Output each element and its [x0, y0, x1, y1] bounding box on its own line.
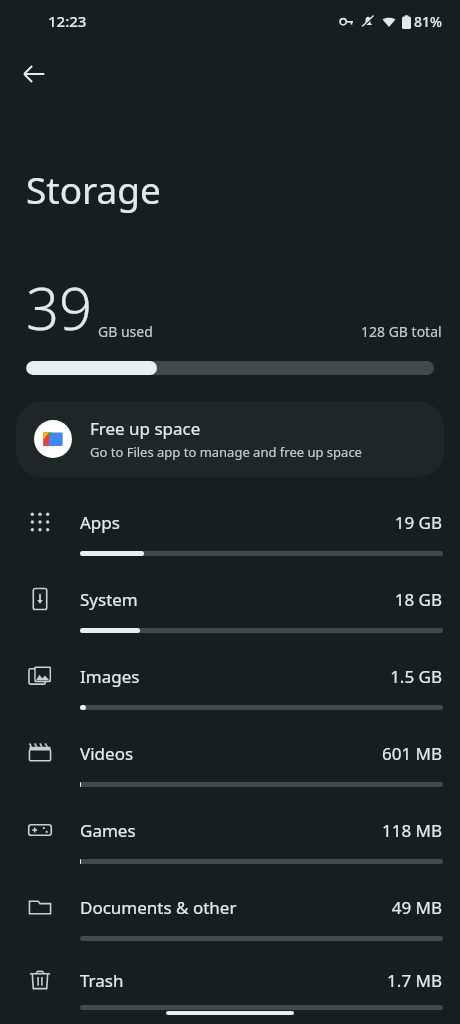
staticText: 39: [26, 268, 93, 347]
button[interactable]: Videos: [0, 724, 460, 801]
button[interactable]: Free up space: [16, 401, 444, 477]
staticText: Trash: [80, 969, 387, 992]
button[interactable]: System: [0, 570, 460, 647]
staticText: Games: [80, 819, 381, 842]
staticText: Apps: [80, 511, 394, 534]
staticText: Videos: [80, 742, 381, 765]
button[interactable]: Images: [0, 647, 460, 724]
staticText: 1.7 MB: [387, 969, 442, 992]
button[interactable]: Apps: [0, 493, 460, 570]
staticText: 601 MB: [381, 742, 442, 765]
staticText: 118 MB: [381, 819, 442, 842]
staticText: Documents & other: [80, 896, 391, 919]
staticText: Images: [80, 665, 390, 688]
staticText: GB used: [98, 322, 153, 341]
button[interactable]: Games: [0, 801, 460, 878]
staticText: 128 GB total: [361, 322, 442, 341]
staticText: Go to Files app to manage and free up sp…: [90, 443, 362, 461]
staticText: Storage: [26, 164, 161, 214]
staticText: 18 GB: [394, 588, 442, 611]
staticText: 1.5 GB: [390, 665, 442, 688]
button[interactable]: Back: [10, 50, 58, 98]
staticText: System: [80, 588, 394, 611]
staticText: Free up space: [90, 417, 201, 440]
staticText: 81%: [414, 12, 442, 31]
button[interactable]: Documents & other: [0, 878, 460, 955]
staticText: 49 MB: [391, 896, 442, 919]
staticText: 12:23: [48, 11, 87, 31]
staticText: 19 GB: [394, 511, 442, 534]
button[interactable]: Trash: [0, 955, 460, 1024]
